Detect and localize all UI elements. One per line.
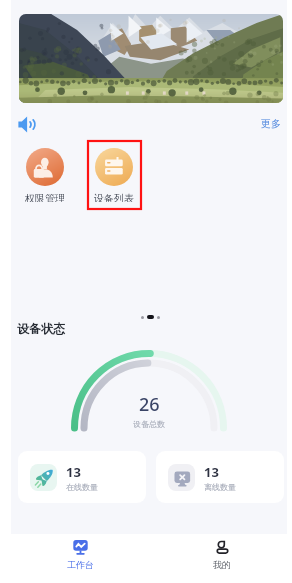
button[interactable]: 工作台 [50, 534, 110, 583]
staticText: 设备状态 [17, 321, 65, 336]
button[interactable]: 13 [156, 451, 284, 503]
staticText: 权限管理 [25, 192, 65, 202]
button[interactable] [19, 14, 283, 103]
staticText: 在线数量 [66, 482, 98, 492]
staticText: 13 [204, 463, 219, 481]
staticText: 设备列表 [94, 192, 134, 202]
staticText: 设备总数 [133, 419, 165, 429]
button[interactable]: 设备列表 [88, 141, 140, 202]
button[interactable]: 我的 [192, 534, 252, 583]
staticText: 更多 [261, 117, 281, 130]
staticText: 离线数量 [204, 482, 236, 492]
button[interactable]: 更多 [261, 117, 281, 130]
staticText: 26 [139, 392, 160, 417]
button[interactable]: 权限管理 [19, 141, 71, 202]
button[interactable]: 13 [18, 451, 146, 503]
button[interactable]: Announcements [18, 115, 37, 134]
staticText: 我的 [213, 559, 231, 570]
staticText: 工作台 [67, 559, 94, 570]
staticText: 13 [66, 463, 81, 481]
